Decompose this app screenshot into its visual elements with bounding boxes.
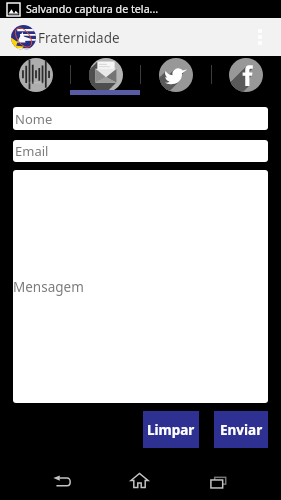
button[interactable]: Radio xyxy=(0,56,71,95)
button[interactable]: Recents xyxy=(197,456,240,500)
staticText: Email xyxy=(15,142,49,160)
staticText: Enviar xyxy=(220,421,263,439)
button[interactable]: Email xyxy=(13,140,268,162)
button[interactable]: Nome xyxy=(13,107,268,130)
button[interactable]: Back xyxy=(41,456,84,500)
staticText: Nome xyxy=(15,110,53,128)
button[interactable]: Limpar xyxy=(143,411,199,448)
button[interactable]: Mail xyxy=(71,56,141,95)
button[interactable]: Mensagem xyxy=(13,170,268,403)
staticText: Fraternidade xyxy=(38,29,120,47)
button[interactable]: Facebook xyxy=(211,56,281,95)
button[interactable]: Home xyxy=(118,456,161,500)
staticText: Limpar xyxy=(147,421,195,439)
staticText: Mensagem xyxy=(13,278,84,296)
staticText: Salvando captura de tela... xyxy=(26,2,159,17)
button[interactable]: Twitter xyxy=(141,56,211,95)
button[interactable]: Enviar xyxy=(214,411,268,448)
